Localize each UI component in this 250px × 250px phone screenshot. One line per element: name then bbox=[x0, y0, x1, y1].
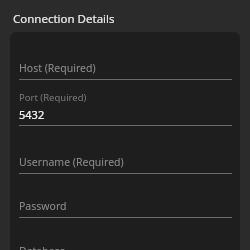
button[interactable]: Username (Required) bbox=[19, 155, 232, 174]
staticText: Host (Required) bbox=[19, 61, 96, 75]
staticText: Database bbox=[19, 244, 66, 250]
staticText: Port (Required) bbox=[19, 91, 87, 104]
staticText: Password bbox=[19, 199, 67, 213]
button[interactable]: Password bbox=[19, 199, 232, 218]
button[interactable]: Database bbox=[19, 244, 232, 250]
staticText: 5432 bbox=[19, 107, 45, 122]
button[interactable]: Host (Required) bbox=[19, 61, 232, 80]
staticText: Username (Required) bbox=[19, 155, 124, 169]
staticText: Connection Details bbox=[13, 11, 115, 27]
button[interactable]: Port (Required) bbox=[19, 91, 232, 126]
